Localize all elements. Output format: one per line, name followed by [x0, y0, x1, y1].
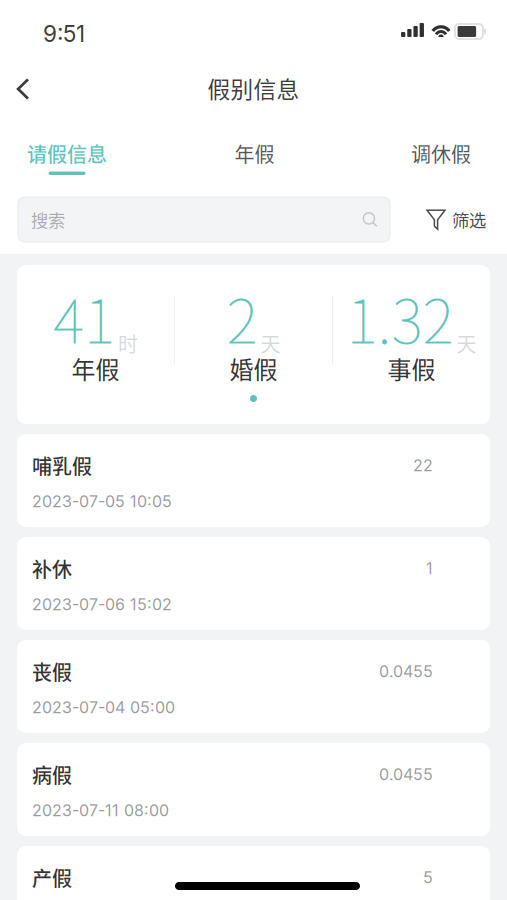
- staticText: 补休: [32, 554, 72, 583]
- button[interactable]: 哺乳假: [17, 434, 490, 527]
- staticText: 事假: [387, 351, 435, 386]
- staticText: 9:51: [43, 20, 85, 47]
- staticText: 病假: [32, 760, 72, 789]
- button[interactable]: 病假: [17, 743, 490, 836]
- staticText: 调休假: [411, 139, 471, 168]
- staticText: 哺乳假: [32, 451, 92, 480]
- staticText: 天: [456, 329, 476, 358]
- staticText: 筛选: [452, 207, 486, 232]
- staticText: 22: [413, 456, 433, 475]
- button[interactable]: 请假信息: [0, 120, 134, 185]
- button[interactable]: 年假: [207, 120, 301, 185]
- button[interactable]: 调休假: [375, 120, 507, 185]
- staticText: 产假: [32, 863, 72, 892]
- staticText: 2023-07-11 08:00: [32, 801, 169, 820]
- button[interactable]: 筛选: [426, 197, 486, 242]
- staticText: 假别信息: [207, 72, 299, 104]
- staticText: 请假信息: [27, 139, 107, 168]
- staticText: 5: [423, 868, 433, 887]
- staticText: 1.32: [346, 274, 453, 361]
- staticText: 1: [426, 559, 433, 578]
- button[interactable]: Back: [1, 66, 45, 110]
- button[interactable]: 产假: [17, 846, 490, 900]
- staticText: 丧假: [32, 657, 72, 686]
- staticText: 0.0455: [379, 765, 433, 784]
- staticText: 时: [118, 329, 138, 358]
- staticText: 2023-07-04 05:00: [32, 698, 175, 717]
- staticText: 婚假: [229, 351, 277, 386]
- staticText: 2023-07-05 10:05: [32, 492, 172, 511]
- staticText: 天: [260, 329, 280, 358]
- staticText: 搜索: [31, 207, 65, 232]
- staticText: 41: [53, 274, 115, 361]
- staticText: 年假: [71, 351, 119, 386]
- staticText: 0.0455: [379, 662, 433, 681]
- button[interactable]: 补休: [17, 537, 490, 630]
- staticText: 2: [226, 274, 257, 361]
- staticText: 2023-07-06 15:02: [32, 595, 172, 614]
- staticText: 年假: [234, 139, 274, 168]
- button[interactable]: 搜索: [18, 197, 390, 242]
- button[interactable]: 丧假: [17, 640, 490, 733]
